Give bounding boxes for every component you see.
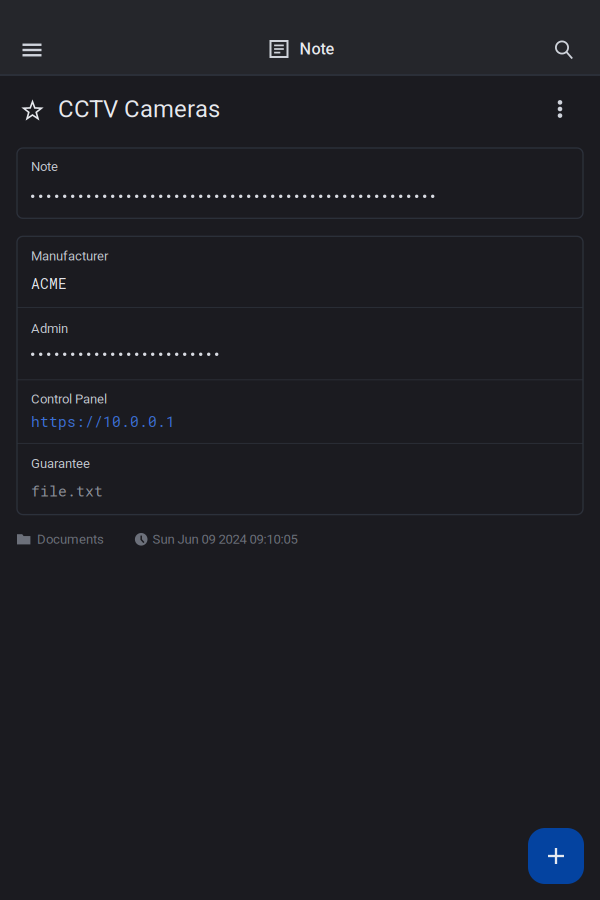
staticText: ACME: [31, 274, 67, 293]
staticText: Sun Jun 09 2024 09:10:05: [152, 532, 297, 547]
button[interactable]: Navigation menu: [12, 25, 52, 75]
staticText: CCTV Cameras: [58, 95, 220, 123]
button[interactable]: Manufacturer: [17, 236, 583, 307]
staticText: Note: [31, 159, 58, 174]
button[interactable]: More options: [540, 89, 580, 129]
button[interactable]: Search: [541, 25, 587, 75]
button[interactable]: Admin: [17, 308, 583, 379]
button[interactable]: Add to favourites: [16, 91, 49, 133]
staticText: Note: [299, 39, 334, 59]
staticText: https://10.0.0.1: [31, 412, 175, 431]
staticText: file.txt: [31, 481, 103, 500]
button[interactable]: Note: [17, 148, 583, 218]
staticText: Manufacturer: [31, 248, 108, 264]
button[interactable]: Control Panel: [17, 380, 583, 443]
staticText: Documents: [37, 532, 104, 547]
button[interactable]: Add entry: [528, 828, 584, 884]
staticText: Guarantee: [31, 456, 90, 471]
button[interactable]: Guarantee: [17, 444, 583, 515]
button[interactable]: Documents: [17, 532, 104, 547]
staticText: Control Panel: [31, 391, 107, 407]
staticText: Admin: [31, 321, 68, 336]
